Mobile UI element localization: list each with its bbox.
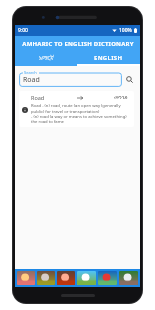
staticText: Search bbox=[24, 70, 37, 75]
staticText: Road bbox=[31, 94, 77, 101]
button[interactable]: Search bbox=[122, 72, 136, 86]
button[interactable]: Info bbox=[22, 107, 28, 113]
staticText: ENGLISH bbox=[94, 54, 123, 62]
staticText: መንገድ bbox=[114, 95, 129, 101]
staticText: አማርኛ bbox=[39, 54, 54, 62]
button[interactable]: Road bbox=[19, 91, 134, 127]
staticText: Road bbox=[23, 75, 40, 85]
button[interactable]: Advertisement bbox=[15, 269, 140, 287]
button[interactable]: ENGLISH bbox=[77, 51, 140, 64]
staticText: AMHARIC TO ENGLISH DICTIONARY bbox=[22, 40, 134, 48]
button[interactable]: አማርኛ bbox=[15, 51, 77, 64]
button[interactable]: Search bbox=[19, 70, 122, 87]
staticText: 100% bbox=[119, 27, 132, 34]
staticText: 9:00 bbox=[18, 27, 28, 34]
staticText: Road - (n) road, route (an open way (gen… bbox=[31, 103, 131, 124]
